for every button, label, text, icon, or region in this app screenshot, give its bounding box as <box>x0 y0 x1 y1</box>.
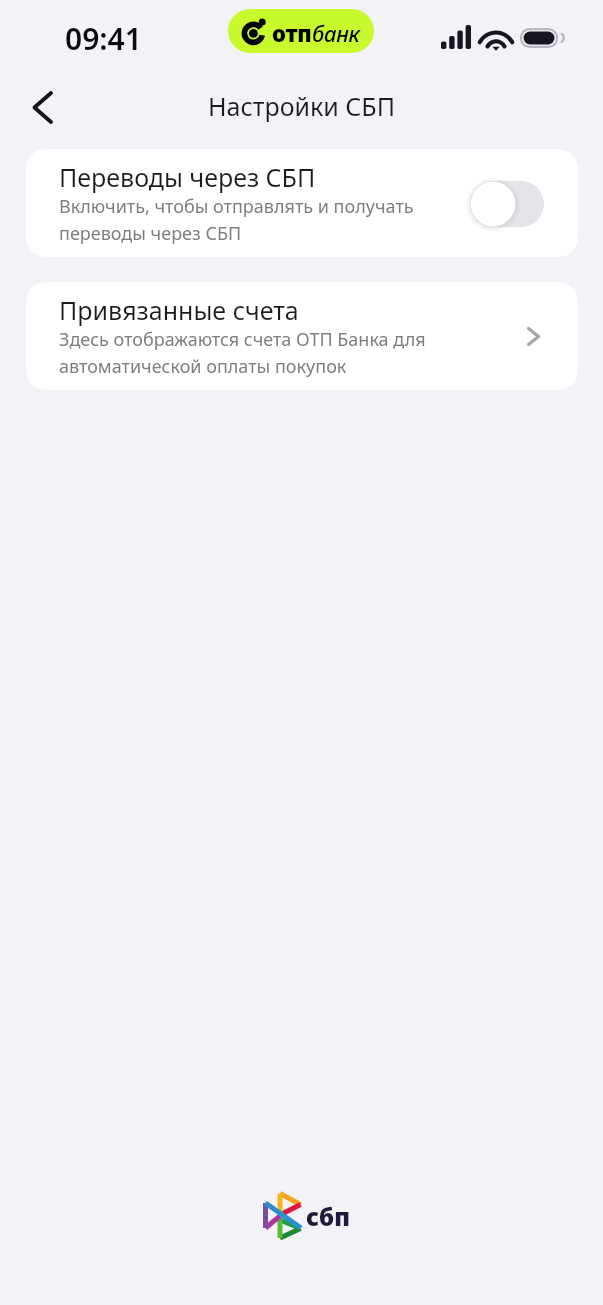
button[interactable]: ОТП Банк <box>228 9 374 53</box>
staticText: Привязанные счета <box>59 293 299 327</box>
staticText: сбп <box>306 1200 350 1233</box>
button[interactable] <box>26 149 578 257</box>
button[interactable]: Система быстрых платежей <box>264 1192 348 1240</box>
staticText: 09:41 <box>65 18 142 59</box>
staticText: Переводы через СБП <box>59 160 316 194</box>
button[interactable]: Назад <box>18 83 66 131</box>
staticText: банк <box>312 18 360 48</box>
button[interactable]: Переводы через СБП <box>470 181 544 227</box>
staticText: отп <box>272 18 312 48</box>
button[interactable] <box>26 282 578 390</box>
staticText: Настройки СБП <box>208 89 395 123</box>
button[interactable]: Привязанные счета <box>508 311 558 361</box>
staticText: Включить, чтобы отправлять и получать пе… <box>59 194 414 245</box>
staticText: Здесь отображаются счета ОТП Банка для а… <box>59 327 426 378</box>
